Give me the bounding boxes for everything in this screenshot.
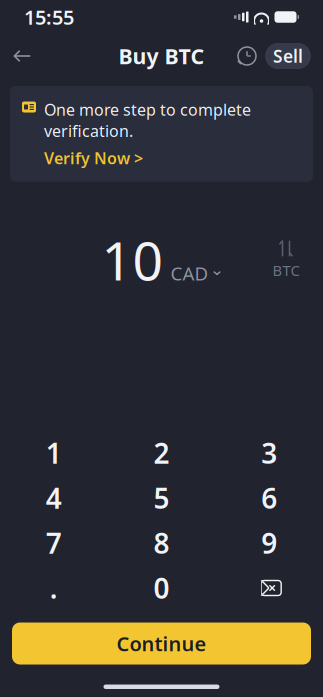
staticText: 15:55 [24,4,74,30]
button[interactable]: Switch to BTC [263,239,309,280]
button[interactable]: 1 [0,430,108,475]
button[interactable]: Order history [229,34,265,78]
button[interactable]: Delete [215,565,323,610]
staticText: 1 [46,434,62,472]
button[interactable]: 9 [215,520,323,565]
staticText: 8 [153,524,169,562]
button[interactable]: CAD [170,261,221,286]
staticText: 10 [101,224,163,295]
staticText: . [50,569,58,607]
button[interactable]: 8 [108,520,215,565]
staticText: One more step to complete verification. [44,99,251,141]
button[interactable]: 6 [215,475,323,520]
staticText: Sell [273,44,303,67]
button[interactable]: . [0,565,108,610]
staticText: 4 [46,479,62,517]
button[interactable]: One more step to complete verification. [10,86,313,182]
button[interactable]: Continue [12,622,311,664]
staticText: Buy BTC [118,42,204,70]
button[interactable]: Sell [265,43,311,69]
staticText: Verify Now > [44,147,143,169]
button[interactable]: 0 [108,565,215,610]
staticText: 5 [153,479,169,517]
button[interactable]: 3 [215,430,323,475]
button[interactable]: 2 [108,430,215,475]
staticText: CAD [170,261,208,286]
staticText: 3 [261,434,277,472]
staticText: 2 [153,434,169,472]
staticText: Continue [116,630,206,657]
button[interactable]: Back [0,34,44,78]
staticText: BTC [272,260,299,280]
staticText: 7 [46,524,62,562]
button[interactable]: 7 [0,520,108,565]
staticText: 0 [153,569,169,607]
staticText: 9 [261,524,277,562]
button[interactable]: 4 [0,475,108,520]
staticText: 6 [261,479,277,517]
button[interactable]: 5 [108,475,215,520]
